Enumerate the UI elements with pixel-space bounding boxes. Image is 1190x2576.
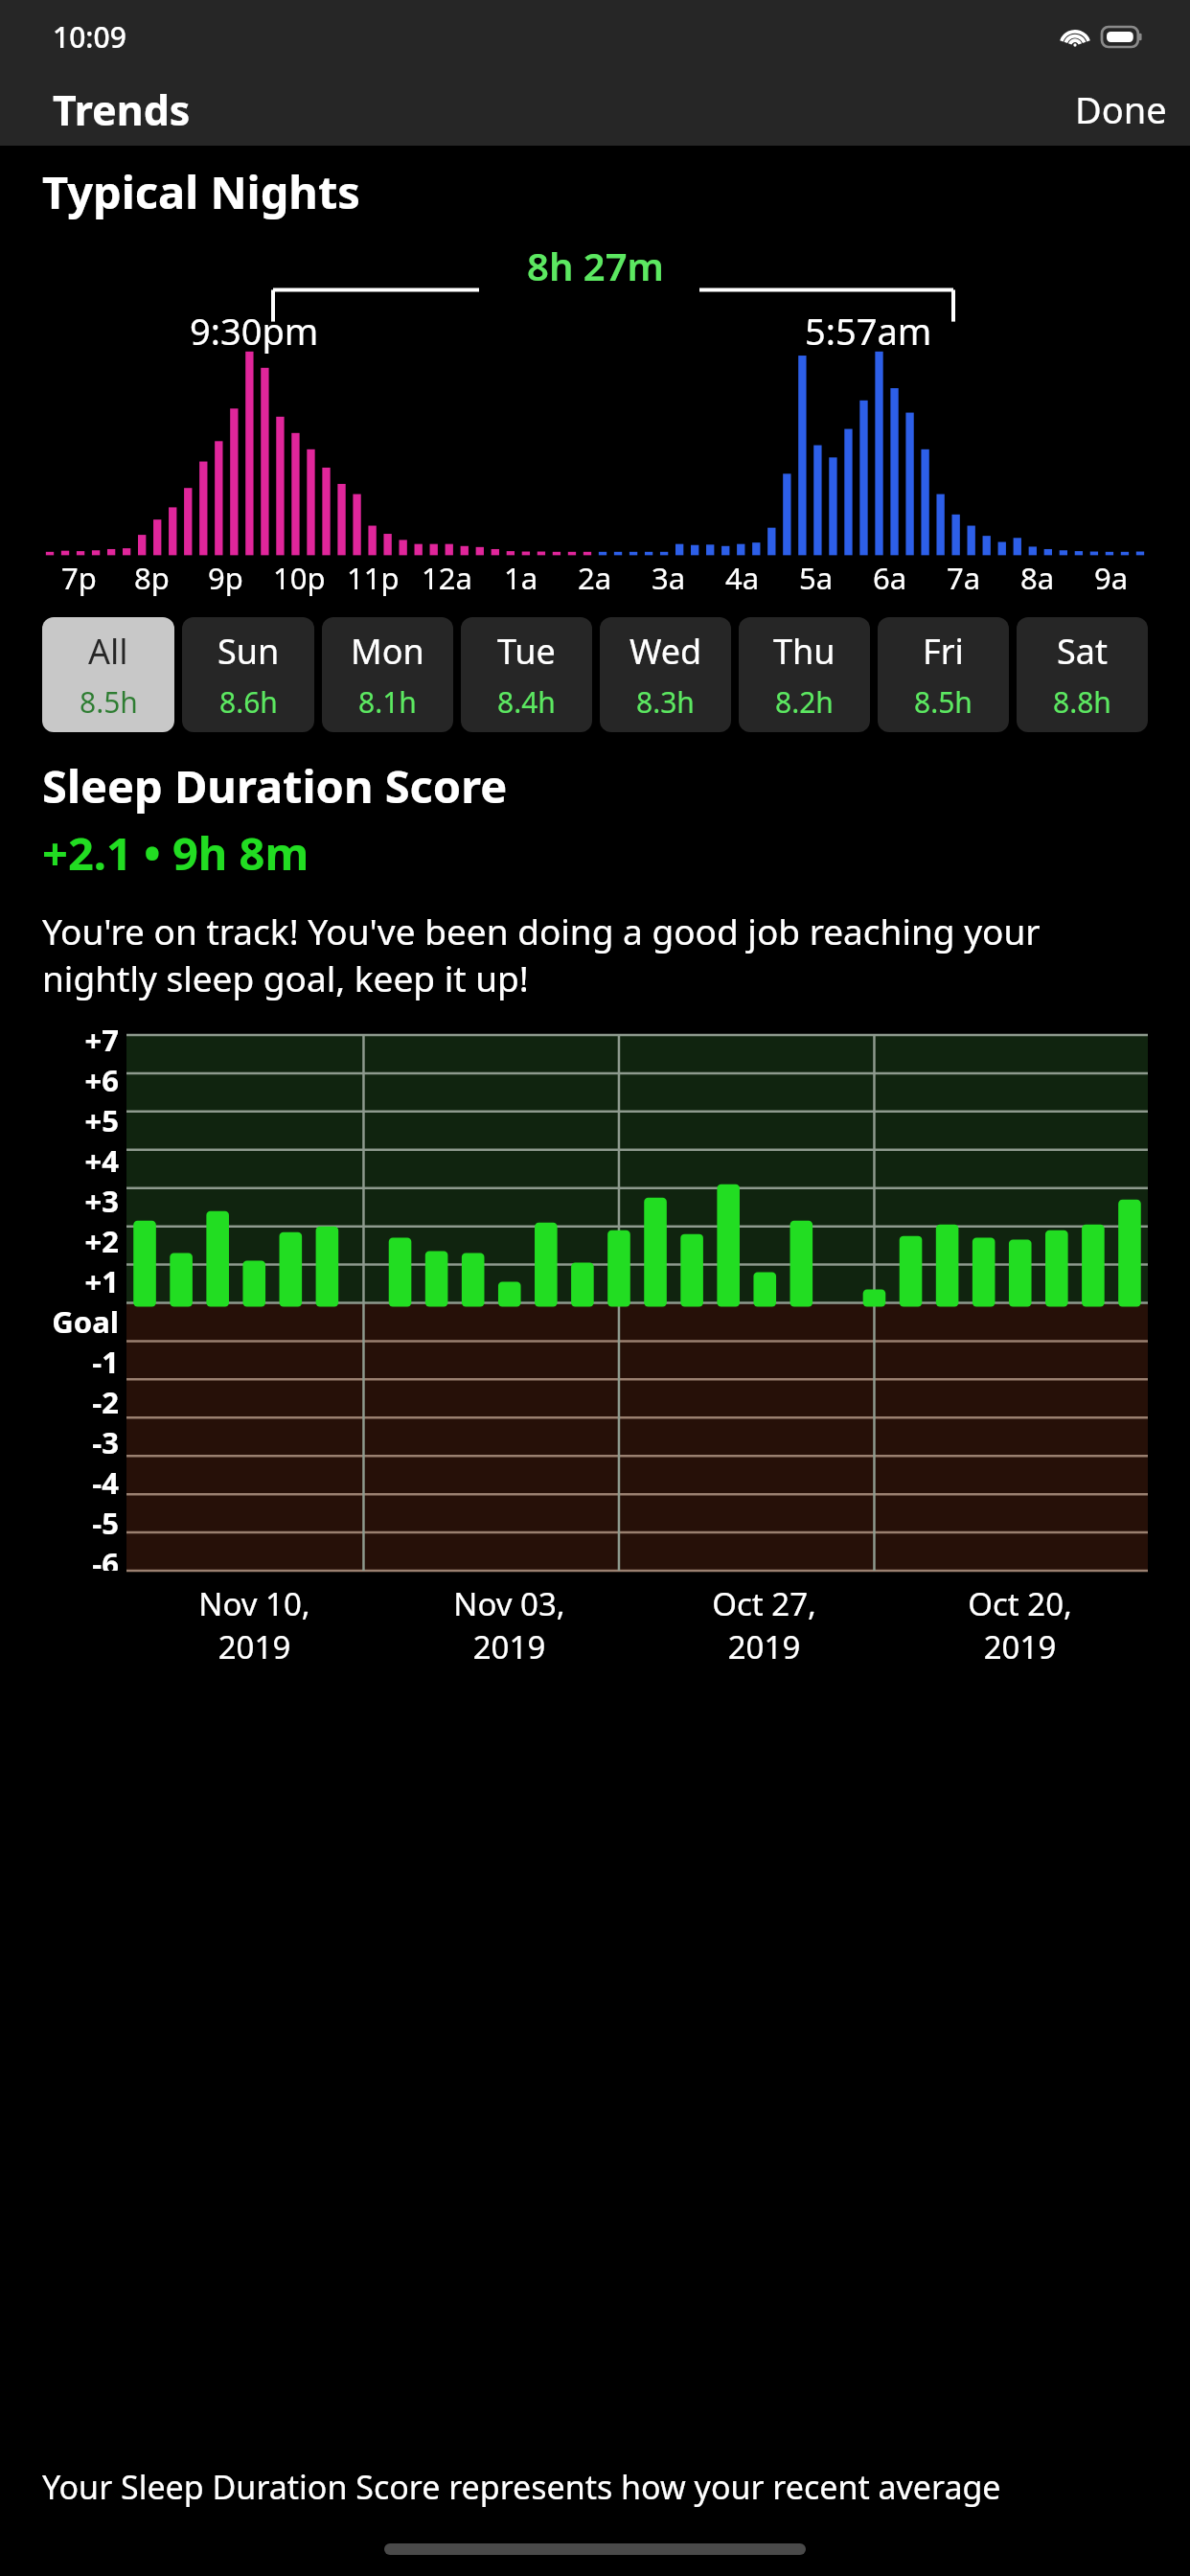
staticText: All	[88, 628, 128, 675]
staticText: 4a	[725, 558, 760, 598]
button[interactable]: Fri	[878, 617, 1009, 732]
staticText: -5	[92, 1503, 119, 1543]
staticText: 8.5h	[80, 682, 138, 722]
staticText: 7a	[947, 558, 981, 598]
staticText: Done	[1075, 84, 1167, 134]
staticText: You're on track! You've been doing a goo…	[42, 907, 1148, 1002]
staticText: -2	[92, 1382, 119, 1422]
staticText: 8.1h	[358, 682, 417, 722]
staticText: +2.1 • 9h 8m	[42, 822, 309, 884]
staticText: Fri	[923, 628, 964, 675]
staticText: +1	[84, 1261, 119, 1301]
staticText: 8.8h	[1053, 682, 1111, 722]
staticText: +6	[84, 1060, 119, 1100]
staticText: Thu	[773, 628, 835, 675]
staticText: +7	[84, 1020, 119, 1060]
staticText: -3	[92, 1422, 119, 1462]
staticText: +5	[84, 1100, 119, 1140]
staticText: +4	[84, 1140, 119, 1181]
button[interactable]: Tue	[461, 617, 592, 732]
staticText: 2a	[578, 558, 612, 598]
staticText: Nov 10, 2019	[198, 1582, 310, 1667]
staticText: 8.4h	[497, 682, 556, 722]
staticText: Wed	[629, 628, 702, 675]
button[interactable]: Sun	[182, 617, 314, 732]
button[interactable]: Thu	[739, 617, 870, 732]
staticText: 6a	[873, 558, 907, 598]
button[interactable]: Done	[1052, 75, 1190, 144]
staticText: Sun	[217, 628, 280, 675]
staticText: 5:57am	[805, 306, 932, 356]
staticText: 9:30pm	[190, 306, 319, 356]
staticText: Tue	[497, 628, 556, 675]
staticText: +3	[84, 1181, 119, 1221]
button[interactable]: Mon	[322, 617, 453, 732]
staticText: Oct 27, 2019	[712, 1582, 816, 1667]
staticText: 8.5h	[914, 682, 973, 722]
staticText: 8.2h	[775, 682, 834, 722]
staticText: 12a	[422, 558, 472, 598]
staticText: Typical Nights	[42, 161, 360, 222]
staticText: 10p	[273, 558, 326, 598]
staticText: -1	[92, 1342, 119, 1382]
staticText: Trends	[53, 81, 191, 138]
staticText: Goal	[52, 1301, 119, 1342]
staticText: 8.3h	[636, 682, 695, 722]
staticText: 11p	[347, 558, 400, 598]
staticText: Nov 03, 2019	[453, 1582, 565, 1667]
staticText: -6	[92, 1543, 119, 1571]
staticText: 1a	[504, 558, 538, 598]
staticText: 9a	[1094, 558, 1129, 598]
staticText: +2	[84, 1221, 119, 1261]
staticText: Your Sleep Duration Score represents how…	[42, 2465, 1001, 2509]
staticText: Sat	[1057, 628, 1108, 675]
button[interactable]: Sat	[1017, 617, 1148, 732]
staticText: 10:09	[53, 17, 126, 57]
staticText: 8.6h	[219, 682, 278, 722]
staticText: Oct 20, 2019	[968, 1582, 1072, 1667]
staticText: 3a	[652, 558, 686, 598]
staticText: -4	[92, 1462, 119, 1503]
staticText: 7p	[61, 558, 97, 598]
staticText: 9p	[208, 558, 243, 598]
staticText: Mon	[351, 628, 424, 675]
button[interactable]: Wed	[600, 617, 731, 732]
staticText: 8p	[134, 558, 170, 598]
staticText: 8a	[1020, 558, 1055, 598]
staticText: 5a	[799, 558, 834, 598]
staticText: 8h 27m	[527, 240, 664, 291]
button[interactable]: All	[42, 617, 174, 732]
staticText: Sleep Duration Score	[42, 755, 508, 816]
